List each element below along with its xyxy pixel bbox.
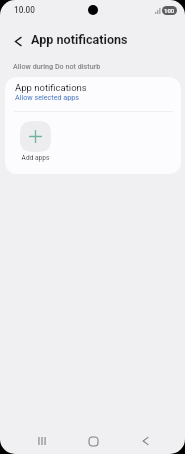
staticText: Add apps — [20, 154, 51, 162]
button[interactable]: Back — [8, 31, 28, 51]
staticText: App notifications — [15, 82, 87, 93]
staticText: Allow during Do not disturb — [13, 62, 101, 70]
button[interactable]: App notifications — [5, 77, 181, 111]
staticText: App notifications — [31, 32, 128, 47]
button[interactable]: Recents — [27, 426, 57, 454]
staticText: 100 — [164, 7, 175, 14]
button[interactable]: Add apps — [20, 121, 51, 152]
staticText: 10.00 — [14, 5, 35, 15]
button[interactable]: Back — [130, 426, 160, 454]
staticText: Allow selected apps — [15, 93, 79, 101]
button[interactable]: Home — [78, 426, 108, 454]
